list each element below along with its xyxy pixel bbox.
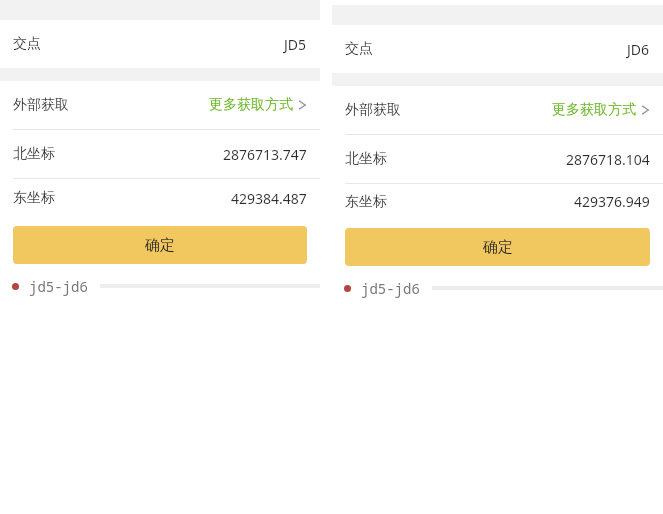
button[interactable]: 确定	[345, 228, 650, 266]
staticText: 外部获取	[13, 96, 69, 114]
button[interactable]: 交点	[332, 25, 663, 73]
button[interactable]: 东坐标	[332, 184, 663, 219]
staticText: 交点	[13, 35, 41, 53]
staticText: 429376.949	[574, 192, 650, 211]
staticText: 429384.487	[231, 189, 307, 208]
staticText: 2876718.104	[566, 150, 650, 169]
staticText: jd5-jd6	[361, 279, 420, 298]
button[interactable]: 东坐标	[0, 179, 320, 217]
button[interactable]: 外部获取	[0, 81, 320, 129]
staticText: 2876713.747	[223, 145, 307, 164]
staticText: 东坐标	[345, 193, 387, 211]
staticText: 北坐标	[13, 145, 55, 163]
staticText: JD6	[627, 40, 650, 59]
staticText: 东坐标	[13, 189, 55, 207]
staticText: 确定	[483, 238, 513, 257]
button[interactable]: 北坐标	[0, 130, 320, 178]
button[interactable]: 确定	[13, 226, 307, 264]
staticText: 外部获取	[345, 101, 401, 119]
staticText: JD5	[284, 35, 307, 54]
staticText: 更多获取方式	[209, 96, 293, 114]
staticText: 更多获取方式	[552, 101, 636, 119]
staticText: 确定	[145, 236, 175, 255]
staticText: jd5-jd6	[29, 277, 88, 296]
button[interactable]: 北坐标	[332, 135, 663, 183]
staticText: 北坐标	[345, 150, 387, 168]
staticText: 交点	[345, 40, 373, 58]
button[interactable]: 外部获取	[332, 86, 663, 134]
button[interactable]: 交点	[0, 20, 320, 68]
